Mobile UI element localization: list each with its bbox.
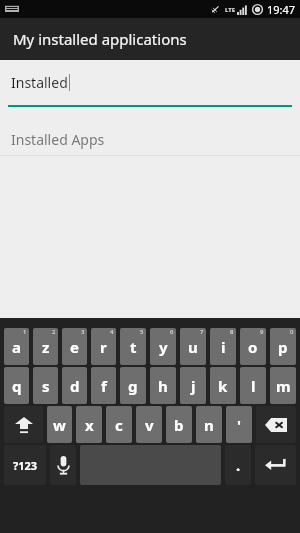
staticText: Installed: [11, 73, 68, 92]
button[interactable]: f: [91, 367, 116, 404]
button[interactable]: Installed: [0, 60, 300, 105]
button[interactable]: c: [106, 406, 132, 443]
staticText: 9: [260, 328, 264, 336]
staticText: 1: [23, 328, 27, 336]
button[interactable]: r: [91, 328, 116, 365]
button[interactable]: m: [270, 367, 296, 404]
button[interactable]: i: [210, 328, 236, 365]
staticText: LTE: [225, 6, 236, 14]
button[interactable]: o: [240, 328, 266, 365]
button[interactable]: e: [62, 328, 87, 365]
button[interactable]: Enter: [255, 445, 296, 485]
staticText: 2: [52, 328, 56, 336]
staticText: k: [218, 376, 228, 396]
button[interactable]: w: [47, 406, 72, 443]
button[interactable]: Shift: [4, 406, 43, 443]
staticText: q: [12, 376, 22, 396]
button[interactable]: a: [4, 328, 29, 365]
button[interactable]: z: [33, 328, 58, 365]
staticText: d: [70, 376, 80, 396]
staticText: x: [85, 415, 94, 435]
staticText: c: [115, 415, 123, 435]
staticText: ?123: [13, 458, 38, 473]
button[interactable]: s: [33, 367, 58, 404]
button[interactable]: k: [210, 367, 236, 404]
staticText: r: [100, 337, 107, 357]
button[interactable]: l: [240, 367, 266, 404]
staticText: Installed Apps: [11, 130, 105, 149]
staticText: o: [248, 337, 258, 357]
staticText: 19:47: [267, 2, 296, 17]
staticText: g: [128, 376, 138, 396]
button[interactable]: d: [62, 367, 87, 404]
staticText: s: [42, 376, 50, 396]
staticText: .: [236, 455, 241, 475]
staticText: h: [158, 376, 168, 396]
staticText: y: [159, 337, 168, 357]
staticText: l: [251, 376, 256, 396]
staticText: 3: [81, 328, 85, 336]
staticText: ': [237, 415, 241, 435]
button[interactable]: p: [270, 328, 296, 365]
staticText: z: [42, 337, 50, 357]
staticText: a: [12, 337, 21, 357]
button[interactable]: My installed applications: [0, 18, 300, 60]
button[interactable]: h: [150, 367, 176, 404]
button[interactable]: Installed Apps: [0, 123, 300, 155]
staticText: u: [188, 337, 198, 357]
staticText: 7: [200, 328, 204, 336]
button[interactable]: v: [136, 406, 162, 443]
staticText: j: [191, 376, 196, 396]
button[interactable]: ?123: [4, 445, 46, 485]
staticText: b: [174, 415, 184, 435]
staticText: f: [101, 376, 107, 396]
staticText: m: [276, 376, 291, 396]
button[interactable]: Voice input: [50, 445, 76, 485]
staticText: 6: [170, 328, 174, 336]
staticText: t: [130, 337, 137, 357]
button[interactable]: j: [180, 367, 206, 404]
button[interactable]: q: [4, 367, 29, 404]
button[interactable]: ': [226, 406, 252, 443]
button[interactable]: t: [120, 328, 146, 365]
button[interactable]: u: [180, 328, 206, 365]
staticText: v: [145, 415, 154, 435]
button[interactable]: n: [196, 406, 222, 443]
button[interactable]: Backspace: [256, 406, 296, 443]
button[interactable]: b: [166, 406, 192, 443]
button[interactable]: .: [225, 445, 251, 485]
staticText: 5: [140, 328, 144, 336]
staticText: w: [53, 415, 66, 435]
staticText: 8: [230, 328, 234, 336]
staticText: 0: [290, 328, 294, 336]
staticText: 4: [110, 328, 114, 336]
button[interactable]: y: [150, 328, 176, 365]
staticText: i: [221, 337, 226, 357]
staticText: n: [204, 415, 214, 435]
staticText: p: [278, 337, 288, 357]
staticText: e: [70, 337, 79, 357]
button[interactable]: g: [120, 367, 146, 404]
staticText: My installed applications: [13, 29, 187, 49]
button[interactable]: x: [76, 406, 102, 443]
